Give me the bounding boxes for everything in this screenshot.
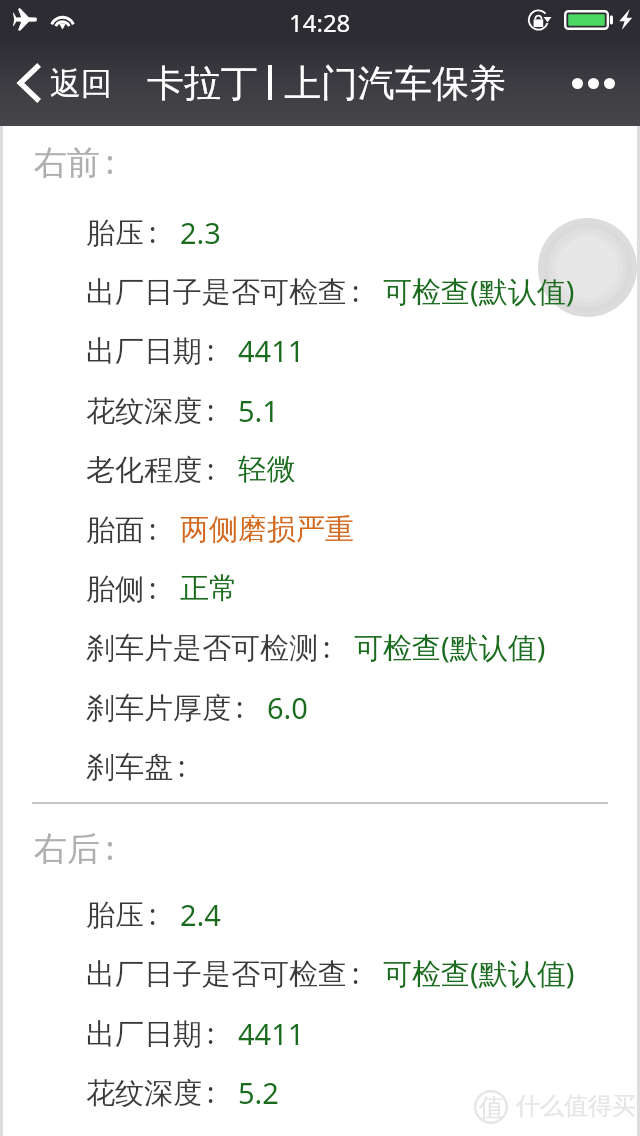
button[interactable]: 出厂日子是否可检查 : [0, 951, 640, 995]
staticText: 胎压 : [86, 894, 157, 934]
staticText: 老化程度 : [86, 449, 215, 489]
staticText: 刹车片是否可检测 : [86, 627, 331, 667]
staticText: 出厂日子是否可检查 : [86, 953, 360, 993]
staticText: 出厂日期 : [86, 330, 215, 370]
button[interactable]: 刹车盘 : [0, 744, 640, 788]
button[interactable]: More options [560, 56, 626, 110]
staticText: 刹车盘 : [86, 746, 186, 786]
button[interactable]: 胎面 : [0, 507, 640, 551]
staticText: 5.2 [238, 1073, 279, 1112]
button[interactable]: 出厂日子是否可检查 : [0, 269, 640, 313]
staticText: 2.4 [180, 895, 221, 934]
staticText: 4411 [238, 331, 305, 370]
staticText: 两侧磨损严重 [180, 511, 354, 548]
button[interactable]: 刹车片是否可检测 : [0, 625, 640, 669]
staticText: 6.0 [267, 688, 308, 727]
staticText: 花纹深度 : [86, 390, 215, 430]
staticText: 可检查(默认值) [383, 271, 575, 311]
button[interactable]: 出厂日期 : [0, 1011, 640, 1055]
staticText: 出厂日期 : [86, 1013, 215, 1053]
staticText: 上门汽车保养 [284, 60, 506, 107]
button[interactable]: 花纹深度 : [0, 1070, 640, 1114]
staticText: 出厂日子是否可检查 : [86, 271, 360, 311]
button[interactable]: 出厂日期 : [0, 328, 640, 372]
other: Battery [564, 10, 613, 30]
staticText: 14:28 [289, 6, 351, 39]
staticText: 刹车片厚度 : [86, 687, 244, 727]
button[interactable]: 胎侧 : [0, 566, 640, 610]
staticText: 胎侧 : [86, 568, 157, 608]
button[interactable]: 老化程度 : [0, 447, 640, 491]
other: Rotation lock [528, 9, 553, 31]
button[interactable]: 刹车片厚度 : [0, 685, 640, 729]
other: Airplane mode [13, 8, 37, 31]
staticText: 可检查(默认值) [383, 953, 575, 993]
staticText: 2.3 [180, 213, 221, 252]
button[interactable]: 返回 [18, 50, 112, 116]
other: Wi-Fi [50, 10, 75, 29]
staticText: 花纹深度 : [86, 1072, 215, 1112]
staticText: 轻微 [238, 451, 296, 488]
button[interactable]: 花纹深度 : [0, 388, 640, 432]
button[interactable]: 胎压 : [0, 210, 640, 254]
staticText: 可检查(默认值) [354, 627, 546, 667]
button[interactable]: 胎压 : [0, 892, 640, 936]
staticText: 4411 [238, 1014, 305, 1053]
staticText: 右后 : [34, 825, 115, 870]
staticText: 返回 [50, 64, 112, 103]
staticText: 卡拉丁 [147, 60, 258, 107]
staticText: 胎面 : [86, 509, 157, 549]
staticText: 胎压 : [86, 212, 157, 252]
staticText: 5.1 [238, 391, 279, 430]
staticText: 正常 [180, 570, 238, 607]
staticText: 值 [479, 1092, 504, 1123]
staticText: 右前 : [34, 139, 115, 184]
staticText: 什么值得买 [516, 1091, 636, 1121]
